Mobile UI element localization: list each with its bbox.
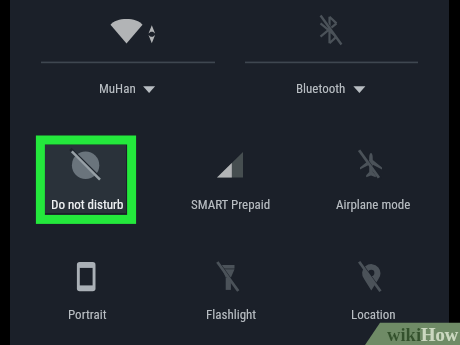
button[interactable]: SMART Prepaid	[191, 197, 271, 212]
button[interactable]: Portrait	[68, 307, 107, 322]
button[interactable]: Flashlight	[206, 307, 257, 322]
staticText: Portrait	[68, 307, 107, 322]
staticText: wikiHow	[387, 324, 459, 345]
staticText: Flashlight	[206, 307, 257, 322]
staticText: SMART Prepaid	[191, 197, 271, 212]
staticText: Do not disturb	[51, 197, 124, 212]
button[interactable]: Wi-Fi MuHan	[99, 81, 136, 96]
button[interactable]: Location	[351, 307, 396, 322]
staticText: MuHan	[99, 81, 136, 96]
staticText: Bluetooth	[296, 81, 346, 96]
button[interactable]: Bluetooth	[296, 81, 346, 96]
button[interactable]: Do not disturb	[51, 197, 124, 212]
staticText: Airplane mode	[336, 197, 411, 212]
staticText: Location	[351, 307, 396, 322]
button[interactable]: Airplane mode	[336, 197, 411, 212]
